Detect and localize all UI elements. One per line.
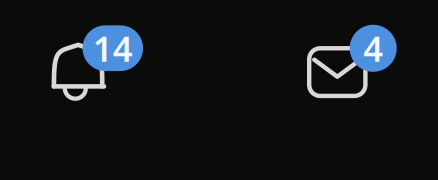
staticText: 4 xyxy=(363,25,383,71)
button[interactable]: Notifications, 14 unread xyxy=(0,0,438,180)
button[interactable]: Mail, 4 unread xyxy=(0,0,438,180)
staticText: 14 xyxy=(93,25,133,71)
